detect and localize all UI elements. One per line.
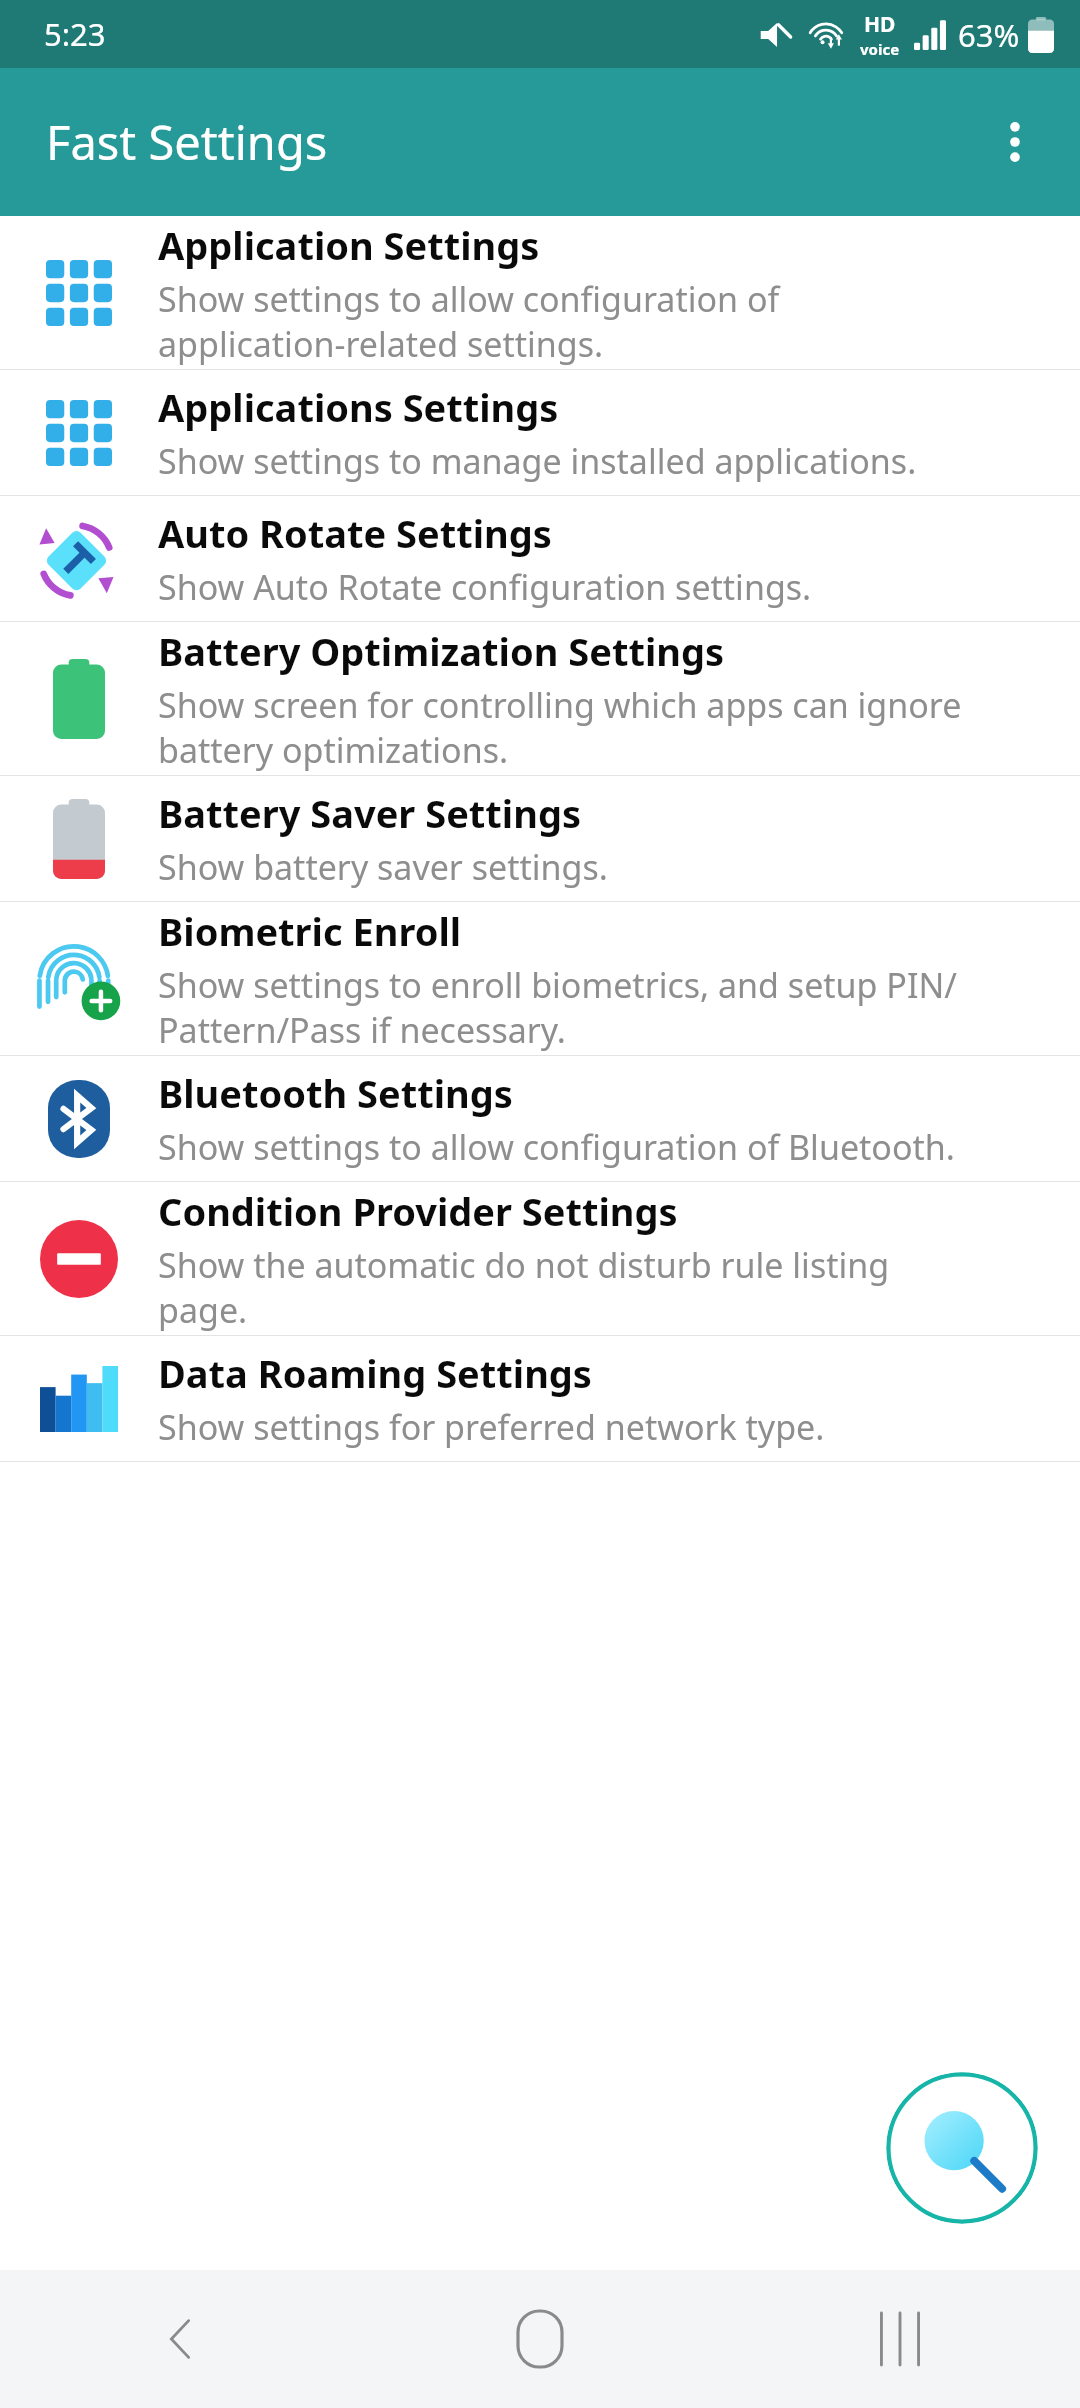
button[interactable]: Applications Settings [0,370,1080,495]
staticText: Bluetooth Settings [158,1067,513,1119]
staticText: Show settings to manage installed applic… [158,438,917,484]
button[interactable]: Application Settings [0,216,1080,369]
staticText: Biometric Enroll [158,905,462,957]
staticText: 5:23 [44,13,106,55]
staticText: 63% [958,14,1020,56]
button[interactable]: Battery Optimization Settings [0,622,1080,775]
button[interactable]: Auto Rotate Settings [0,496,1080,621]
staticText: Battery Optimization Settings [158,625,725,677]
staticText: Show screen for controlling which apps c… [158,682,962,773]
button[interactable]: Recents [720,2270,1080,2408]
staticText: Application Settings [158,219,540,271]
staticText: voice [860,39,900,59]
button[interactable]: Condition Provider Settings [0,1182,1080,1335]
staticText: Battery Saver Settings [158,787,581,839]
button[interactable]: Data Roaming Settings [0,1336,1080,1461]
staticText: Show Auto Rotate configuration settings. [158,564,812,610]
staticText: Show settings to enroll biometrics, and … [158,962,957,1053]
staticText: Show settings for preferred network type… [158,1404,825,1450]
staticText: Show battery saver settings. [158,844,608,890]
button[interactable]: Search [886,2072,1038,2224]
button[interactable]: Biometric Enroll [0,902,1080,1055]
staticText: Data Roaming Settings [158,1347,592,1399]
button[interactable]: Back [0,2270,360,2408]
staticText: Condition Provider Settings [158,1185,678,1237]
staticText: Applications Settings [158,381,559,433]
staticText: Show the automatic do not disturb rule l… [158,1242,890,1333]
staticText: Fast Settings [46,110,328,174]
staticText: HD [864,10,896,39]
staticText: Auto Rotate Settings [158,507,552,559]
staticText: Show settings to allow configuration of … [158,1124,955,1170]
button[interactable]: Home [360,2270,720,2408]
button[interactable]: Battery Saver Settings [0,776,1080,901]
button[interactable]: More options [972,99,1058,185]
button[interactable]: Bluetooth Settings [0,1056,1080,1181]
staticText: Show settings to allow configuration of … [158,276,780,367]
